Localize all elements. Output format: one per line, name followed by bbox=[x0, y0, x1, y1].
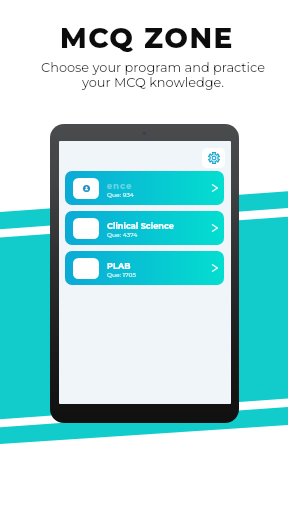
staticText: Choose your program and practice your MC… bbox=[41, 60, 265, 90]
staticText: MCQ ZONE bbox=[60, 21, 234, 55]
staticText: PLAB bbox=[107, 261, 131, 271]
button[interactable]: PLAB bbox=[65, 251, 224, 285]
staticText: ence bbox=[107, 181, 133, 191]
button[interactable]: ence bbox=[65, 171, 224, 205]
button[interactable]: Clinical Science bbox=[65, 211, 224, 245]
button[interactable]: Settings bbox=[202, 148, 225, 168]
staticText: Que: 1705 bbox=[107, 271, 136, 278]
staticText: Que: 934 bbox=[107, 191, 134, 198]
staticText: Que: 4374 bbox=[107, 231, 138, 238]
staticText: Clinical Science bbox=[107, 221, 174, 231]
